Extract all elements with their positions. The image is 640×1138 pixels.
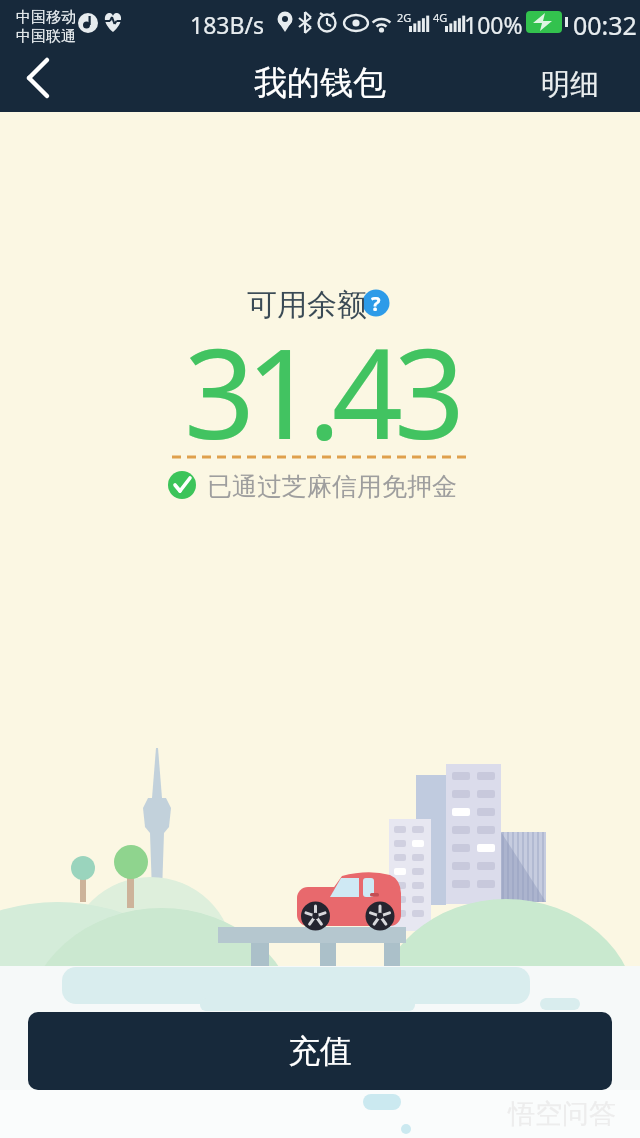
staticText: 明细 — [541, 66, 599, 103]
staticText: 4G — [433, 10, 448, 25]
staticText: 2G — [397, 10, 412, 25]
button[interactable]: 明细 — [530, 57, 610, 112]
button[interactable]: 充值 — [28, 1012, 612, 1090]
staticText: 中国联通 — [16, 27, 76, 46]
staticText: 100% — [464, 9, 523, 40]
button[interactable] — [10, 57, 70, 112]
button[interactable]: ? — [362, 289, 390, 317]
staticText: 已通过芝麻信用免押金 — [207, 471, 457, 502]
staticText: 悟空问答 — [508, 1097, 616, 1131]
staticText: ? — [371, 290, 381, 317]
staticText: 00:32 — [573, 8, 637, 42]
staticText: 我的钱包 — [254, 62, 386, 104]
staticText: 充值 — [288, 1031, 352, 1071]
staticText: 可用余额 — [247, 286, 367, 324]
staticText: 中国移动 — [16, 8, 76, 27]
staticText: 31.43 — [184, 306, 456, 475]
staticText: 183B/s — [190, 9, 264, 40]
